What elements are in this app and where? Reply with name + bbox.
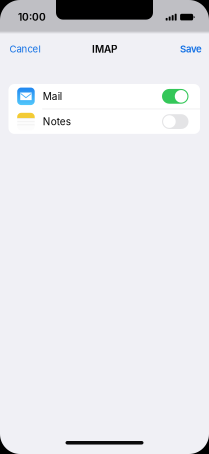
staticText: Cancel [9,43,40,55]
button[interactable]: Cancel [6,39,43,59]
staticText: 10:00 [18,11,46,23]
staticText: Mail [43,90,62,102]
staticText: Notes [43,115,71,128]
staticText: Save [180,43,202,55]
button[interactable]: Save [177,39,205,59]
button[interactable]: Mail [8,84,200,109]
button[interactable]: Notes [8,109,200,134]
staticText: IMAP [92,43,117,55]
